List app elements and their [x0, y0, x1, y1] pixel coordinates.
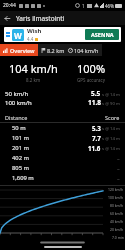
staticText: – — [117, 155, 120, 162]
staticText: 4.4 — [27, 36, 34, 42]
staticText: 46% — [105, 3, 114, 9]
button[interactable]: 201 m — [0, 143, 125, 153]
staticText: s @ 90 m — [101, 101, 120, 107]
staticText: 20 km/h — [110, 227, 124, 232]
staticText: 60 km/h — [110, 211, 124, 216]
button[interactable]: 402 m — [0, 153, 125, 163]
button[interactable]: 50 km/h — [0, 89, 125, 98]
button[interactable]: 100 km/h — [0, 98, 125, 107]
staticText: 101 m — [12, 134, 29, 142]
staticText: – — [117, 165, 120, 172]
staticText: 50 km/h — [5, 90, 29, 98]
staticText: ASENNA — [91, 31, 114, 38]
button[interactable]: W — [4, 27, 121, 42]
button[interactable]: ASENNA — [85, 29, 119, 40]
button[interactable]: Overview — [0, 44, 38, 56]
staticText: s @ 14 m — [101, 126, 120, 132]
staticText: 120 km/h — [108, 187, 124, 192]
staticText: 100 km/h — [108, 195, 124, 200]
staticText: 1,609 m — [12, 174, 34, 182]
staticText: Distance — [5, 114, 28, 121]
staticText: 20:44 — [3, 2, 16, 9]
staticText: s @ 14 m — [101, 92, 120, 98]
staticText: 104 km/h — [9, 61, 58, 76]
staticText: 805 m — [12, 164, 29, 172]
staticText: s @ 14 m — [101, 146, 120, 152]
staticText: 5.5 — [91, 89, 101, 98]
staticText: Overview — [10, 47, 35, 54]
staticText: 8.2 km — [47, 47, 65, 54]
button[interactable]: 101 m — [0, 133, 125, 143]
staticText: 100% — [77, 61, 106, 76]
staticText: 201 m — [12, 144, 29, 152]
button[interactable]: 50 m — [0, 123, 125, 133]
staticText: 40 km/h — [110, 219, 124, 224]
staticText: Yaris ilmastointi — [16, 14, 65, 23]
button[interactable]: 805 m — [0, 163, 125, 173]
staticText: 8.2 km — [26, 77, 41, 83]
staticText: 402 m — [12, 154, 29, 162]
staticText: 50 m — [12, 124, 26, 132]
staticText: 104 km/h — [74, 47, 99, 54]
staticText: Score — [105, 114, 120, 121]
staticText: 7.0 min — [112, 235, 124, 240]
staticText: 11.6 — [88, 144, 101, 152]
staticText: s @ 14 m — [101, 136, 120, 142]
staticText: Wish — [27, 27, 42, 35]
staticText: 5.3 — [92, 124, 101, 132]
staticText: 100 km/h — [5, 99, 32, 107]
staticText: 80 km/h — [110, 203, 124, 208]
staticText: 11.8 — [88, 98, 101, 107]
button[interactable]: 1,609 m — [0, 173, 125, 183]
staticText: 7.7 — [92, 134, 101, 142]
staticText: GPS accuracy — [77, 77, 106, 83]
staticText: 1 — [82, 3, 85, 9]
button[interactable]: 8.2 km — [38, 44, 102, 56]
button[interactable]: Back — [0, 11, 14, 25]
staticText: – — [117, 175, 120, 182]
staticText: W — [14, 30, 22, 41]
